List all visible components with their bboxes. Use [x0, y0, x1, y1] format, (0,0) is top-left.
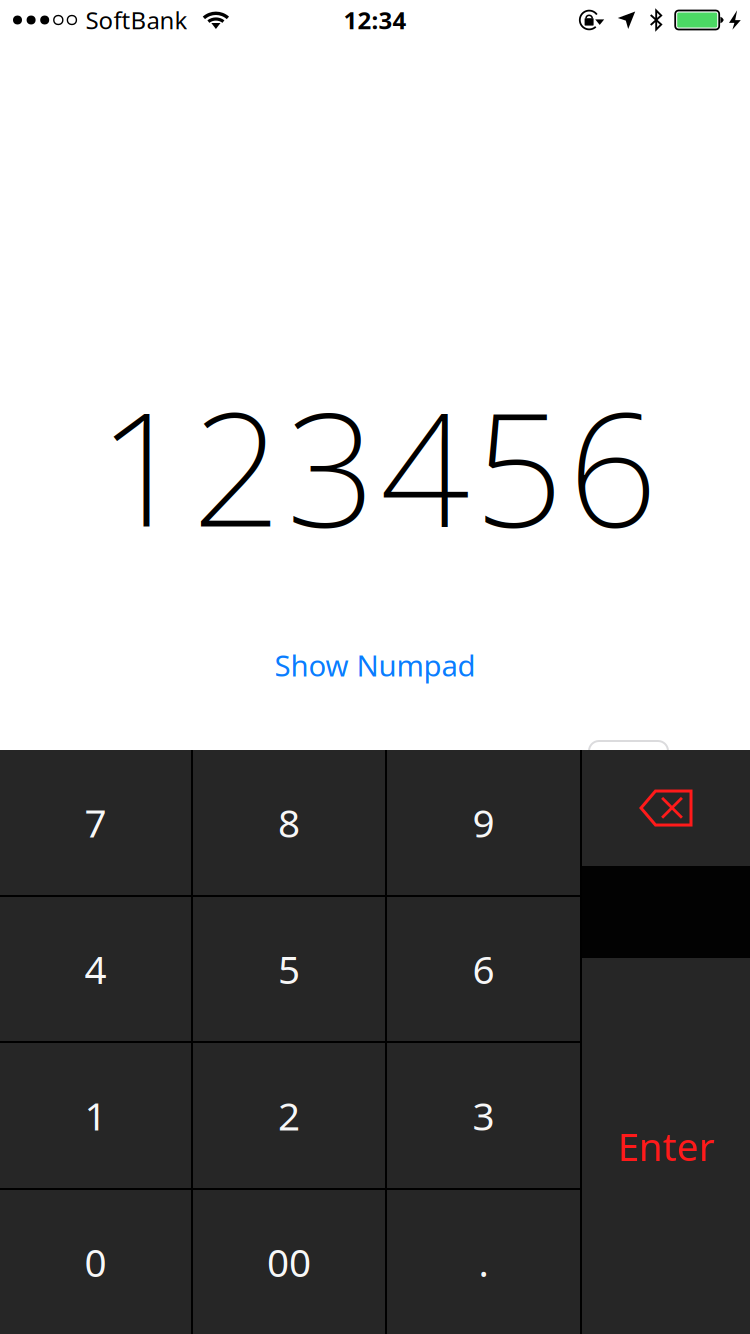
staticText: 3	[472, 1090, 494, 1141]
button[interactable]: 00	[193, 1190, 385, 1334]
staticText: 12:34	[343, 4, 406, 36]
staticText: 6	[472, 943, 494, 995]
staticText: 4	[84, 943, 106, 995]
button[interactable]: 1	[0, 1043, 191, 1188]
staticText: 2	[278, 1090, 300, 1141]
staticText: SoftBank	[85, 4, 187, 36]
button[interactable]: Show Numpad	[0, 645, 750, 685]
button[interactable]: 0	[0, 1190, 191, 1334]
button[interactable]: 6	[387, 897, 580, 1041]
button[interactable]: Enter	[582, 958, 750, 1334]
staticText: Enter	[617, 1120, 714, 1172]
button[interactable]: 3	[387, 1043, 580, 1188]
staticText: 123456	[98, 361, 658, 570]
staticText: 8	[278, 797, 300, 848]
button[interactable]: 2	[193, 1043, 385, 1188]
button[interactable]: 9	[387, 750, 580, 895]
button[interactable]: 4	[0, 897, 191, 1041]
button[interactable]: 7	[0, 750, 191, 895]
button[interactable]: 5	[193, 897, 385, 1041]
staticText: 00	[267, 1236, 311, 1288]
button[interactable]: .	[387, 1190, 580, 1334]
staticText: 7	[84, 797, 106, 848]
staticText: 9	[472, 797, 494, 848]
staticText: .	[478, 1236, 488, 1288]
staticText: Show Numpad	[274, 645, 475, 684]
staticText: 0	[84, 1236, 106, 1288]
button[interactable]: Backspace	[582, 750, 750, 866]
staticText: 1	[84, 1090, 106, 1141]
staticText: 5	[278, 943, 300, 995]
button[interactable]: 8	[193, 750, 385, 895]
